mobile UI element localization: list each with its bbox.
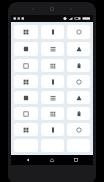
button[interactable]: Item 14	[41, 91, 64, 104]
button[interactable]: Item 15	[67, 91, 90, 104]
button[interactable]: Item 21	[67, 123, 90, 136]
button[interactable]: Back	[21, 155, 35, 165]
button[interactable]: Item 11	[41, 75, 64, 88]
button[interactable]: Item 7	[14, 59, 38, 72]
button[interactable]: Recent apps	[69, 155, 83, 165]
button[interactable]: Item 9	[67, 59, 90, 72]
button[interactable]: Item 1	[14, 25, 38, 39]
button[interactable]: Item 16	[14, 107, 38, 120]
button[interactable]: Item 8	[41, 59, 64, 72]
button[interactable]: Item 5	[41, 42, 64, 56]
button[interactable]: Item 3	[67, 25, 90, 39]
button[interactable]: Item 20	[41, 123, 64, 136]
button[interactable]: Item 4	[14, 42, 38, 56]
button[interactable]: Item 6	[67, 42, 90, 56]
button[interactable]: Item 10	[14, 75, 38, 88]
button[interactable]: Item 19	[14, 123, 38, 136]
button[interactable]: Item 2	[41, 25, 64, 39]
button[interactable]: Item 12	[67, 75, 90, 88]
button[interactable]: Item 17	[41, 107, 64, 120]
button[interactable]: Home	[45, 155, 59, 165]
button[interactable]: Item 18	[67, 107, 90, 120]
button[interactable]: Item 13	[14, 91, 38, 104]
